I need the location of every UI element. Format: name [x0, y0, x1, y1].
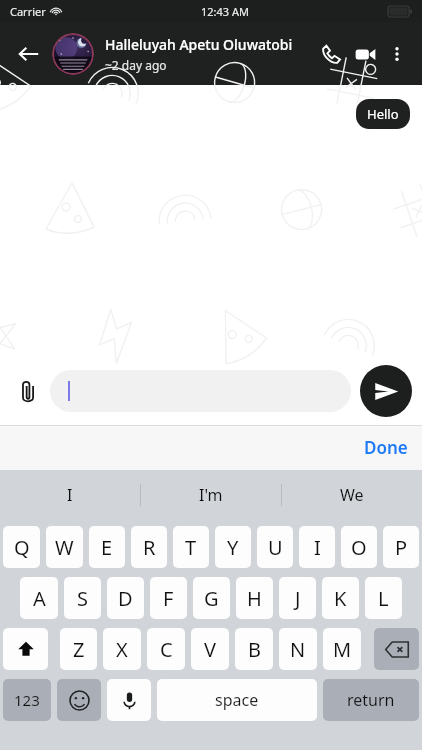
staticText: H	[247, 585, 262, 612]
button[interactable]: L	[365, 577, 402, 619]
button[interactable]: Send	[360, 365, 412, 417]
staticText: 12:43 AM	[201, 4, 249, 19]
staticText: V	[204, 636, 216, 663]
button[interactable]: Backspace	[374, 628, 419, 670]
button[interactable]: I'm	[141, 470, 281, 519]
button[interactable]: W	[46, 526, 83, 568]
button[interactable]: space	[157, 679, 317, 721]
staticText: J	[295, 585, 301, 612]
staticText: F	[163, 585, 174, 612]
staticText: P	[395, 534, 408, 561]
button[interactable]: R	[131, 526, 167, 568]
staticText: Z	[73, 636, 85, 663]
button[interactable]: Emoji	[57, 679, 101, 721]
button[interactable]: E	[89, 526, 125, 568]
staticText: ~2 day ago	[105, 57, 167, 73]
button[interactable]: J	[279, 577, 316, 619]
button[interactable]: Back	[10, 35, 48, 73]
staticText: Q	[14, 534, 30, 561]
button[interactable]: B	[235, 628, 273, 670]
button[interactable]: O	[341, 526, 377, 568]
staticText: space	[215, 689, 259, 711]
staticText: return	[347, 689, 395, 711]
button[interactable]: I	[299, 526, 335, 568]
staticText: I	[67, 484, 73, 506]
button[interactable]: K	[322, 577, 359, 619]
button[interactable]: V	[191, 628, 229, 670]
button[interactable]: G	[193, 577, 230, 619]
staticText: A	[33, 585, 46, 612]
staticText: Hello	[367, 105, 399, 123]
button[interactable]: Video call	[348, 37, 382, 71]
staticText: K	[334, 585, 347, 612]
button[interactable]: Q	[3, 526, 40, 568]
staticText: O	[351, 534, 367, 561]
button[interactable]: U	[257, 526, 293, 568]
button[interactable]: F	[150, 577, 187, 619]
button[interactable]: X	[103, 628, 141, 670]
staticText: D	[118, 585, 133, 612]
button[interactable]: More options	[382, 39, 412, 69]
button[interactable]: 123	[3, 679, 51, 721]
staticText: C	[160, 636, 173, 663]
button[interactable]: C	[147, 628, 185, 670]
button[interactable]: Shift	[3, 628, 48, 670]
staticText: R	[143, 534, 156, 561]
button[interactable]: N	[279, 628, 317, 670]
button[interactable]: Done	[350, 430, 422, 465]
staticText: Y	[227, 534, 239, 561]
staticText: I'm	[199, 484, 223, 506]
staticText: X	[116, 636, 128, 663]
staticText: N	[290, 636, 306, 663]
staticText: U	[268, 534, 283, 561]
button[interactable]	[50, 370, 351, 412]
staticText: Done	[364, 436, 408, 459]
button[interactable]: Call	[314, 37, 348, 71]
button[interactable]: Attach file	[10, 373, 46, 409]
staticText: M	[333, 636, 352, 663]
button[interactable]: I	[0, 470, 140, 519]
staticText: E	[101, 534, 113, 561]
button[interactable]: Hello	[356, 99, 410, 129]
staticText: We	[340, 484, 364, 506]
button[interactable]: S	[64, 577, 101, 619]
button[interactable]: T	[173, 526, 209, 568]
staticText: T	[185, 534, 197, 561]
staticText: S	[77, 585, 88, 612]
button[interactable]: M	[323, 628, 361, 670]
staticText: B	[248, 636, 261, 663]
staticText: W	[55, 534, 74, 561]
button[interactable]: H	[236, 577, 273, 619]
button[interactable]: Dictation	[107, 679, 151, 721]
staticText: G	[204, 585, 219, 612]
button[interactable]: Y	[215, 526, 251, 568]
staticText: Carrier	[10, 4, 46, 19]
staticText: L	[378, 585, 389, 612]
button[interactable]: P	[383, 526, 419, 568]
staticText: 123	[14, 690, 40, 710]
button[interactable]: We	[282, 470, 422, 519]
button[interactable]: D	[107, 577, 144, 619]
button[interactable]: Halleluyah Apetu Oluwatobi	[105, 35, 314, 73]
button[interactable]: A	[20, 577, 58, 619]
button[interactable]: return	[323, 679, 419, 721]
button[interactable]: Profile photo	[52, 33, 94, 75]
button[interactable]: Z	[60, 628, 97, 670]
staticText: I	[314, 534, 321, 561]
staticText: Halleluyah Apetu Oluwatobi	[105, 35, 293, 54]
